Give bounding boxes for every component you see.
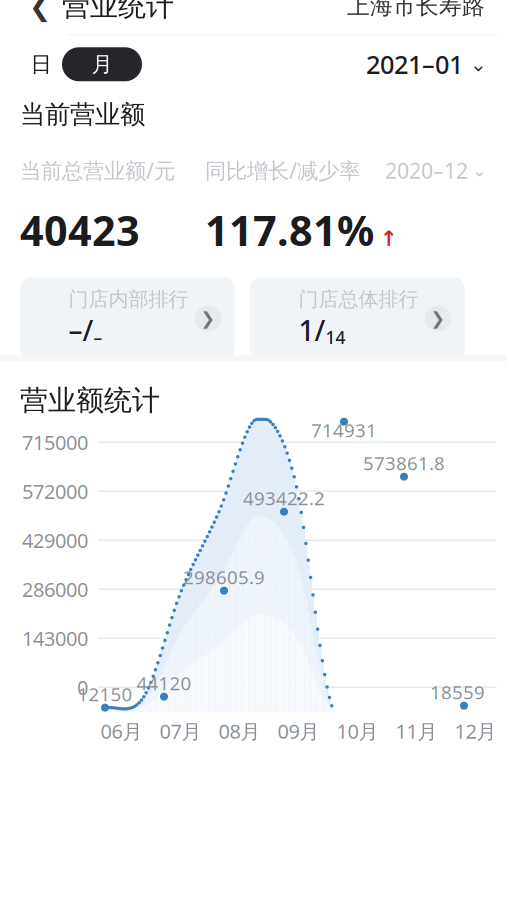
staticText: 营业额统计 bbox=[20, 383, 160, 418]
button[interactable]: 日 bbox=[20, 47, 62, 81]
staticText: 10月 bbox=[336, 718, 378, 744]
staticText: 11月 bbox=[395, 718, 437, 744]
staticText: 06月 bbox=[100, 718, 142, 744]
staticText: 12月 bbox=[454, 718, 496, 744]
staticText: 429000 bbox=[22, 527, 88, 553]
staticText: 44120 bbox=[136, 671, 191, 695]
button[interactable]: 2020–12 bbox=[385, 156, 487, 184]
staticText: 门店总体排行 bbox=[298, 287, 418, 312]
staticText: 573861.8 bbox=[363, 451, 445, 475]
staticText: ❯ bbox=[430, 309, 445, 328]
staticText: 572000 bbox=[22, 478, 88, 504]
staticText: 298605.9 bbox=[183, 565, 265, 589]
staticText: 09月 bbox=[277, 718, 319, 744]
staticText: 143000 bbox=[22, 625, 88, 651]
staticText: 门店内部排行 bbox=[68, 287, 188, 312]
staticText: 日 bbox=[30, 51, 51, 77]
staticText: –/ bbox=[68, 312, 93, 349]
button[interactable]: 门店总体排行 bbox=[250, 277, 465, 359]
staticText: 1/ bbox=[298, 312, 325, 349]
staticText: ⌄ bbox=[472, 161, 487, 180]
button[interactable]: 月 bbox=[62, 47, 142, 81]
staticText: 同比增长/减少率 bbox=[205, 156, 360, 184]
staticText: 2020–12 bbox=[385, 156, 468, 184]
button[interactable]: 上海市长寿路 bbox=[343, 0, 489, 28]
button[interactable]: 返回 bbox=[18, 0, 62, 28]
staticText: 月 bbox=[91, 51, 112, 77]
staticText: 286000 bbox=[22, 576, 88, 602]
staticText: 40423 bbox=[20, 203, 140, 257]
staticText: 12150 bbox=[77, 682, 132, 706]
button[interactable]: 2021–01 bbox=[366, 47, 487, 81]
staticText: ❮ bbox=[29, 0, 51, 21]
staticText: 715000 bbox=[22, 429, 88, 455]
staticText: 上海市长寿路 bbox=[347, 0, 485, 20]
staticText: 14 bbox=[325, 326, 345, 349]
staticText: 714931 bbox=[311, 418, 377, 442]
staticText: 493422.2 bbox=[243, 486, 325, 510]
button[interactable]: 门店内部排行 bbox=[20, 277, 235, 359]
staticText: ❯ bbox=[200, 309, 215, 328]
staticText: 18559 bbox=[430, 680, 485, 704]
staticText: 0 bbox=[77, 674, 88, 700]
staticText: 当前营业额 bbox=[20, 99, 145, 130]
staticText: 2021–01 bbox=[366, 47, 463, 81]
staticText: 07月 bbox=[159, 718, 201, 744]
staticText: 117.81% bbox=[205, 203, 374, 257]
staticText: 营业统计 bbox=[62, 0, 174, 23]
staticText: ↑ bbox=[380, 226, 398, 251]
staticText: ⌄ bbox=[470, 53, 487, 76]
staticText: – bbox=[93, 326, 102, 349]
staticText: 当前总营业额/元 bbox=[20, 156, 175, 184]
staticText: 08月 bbox=[218, 718, 260, 744]
